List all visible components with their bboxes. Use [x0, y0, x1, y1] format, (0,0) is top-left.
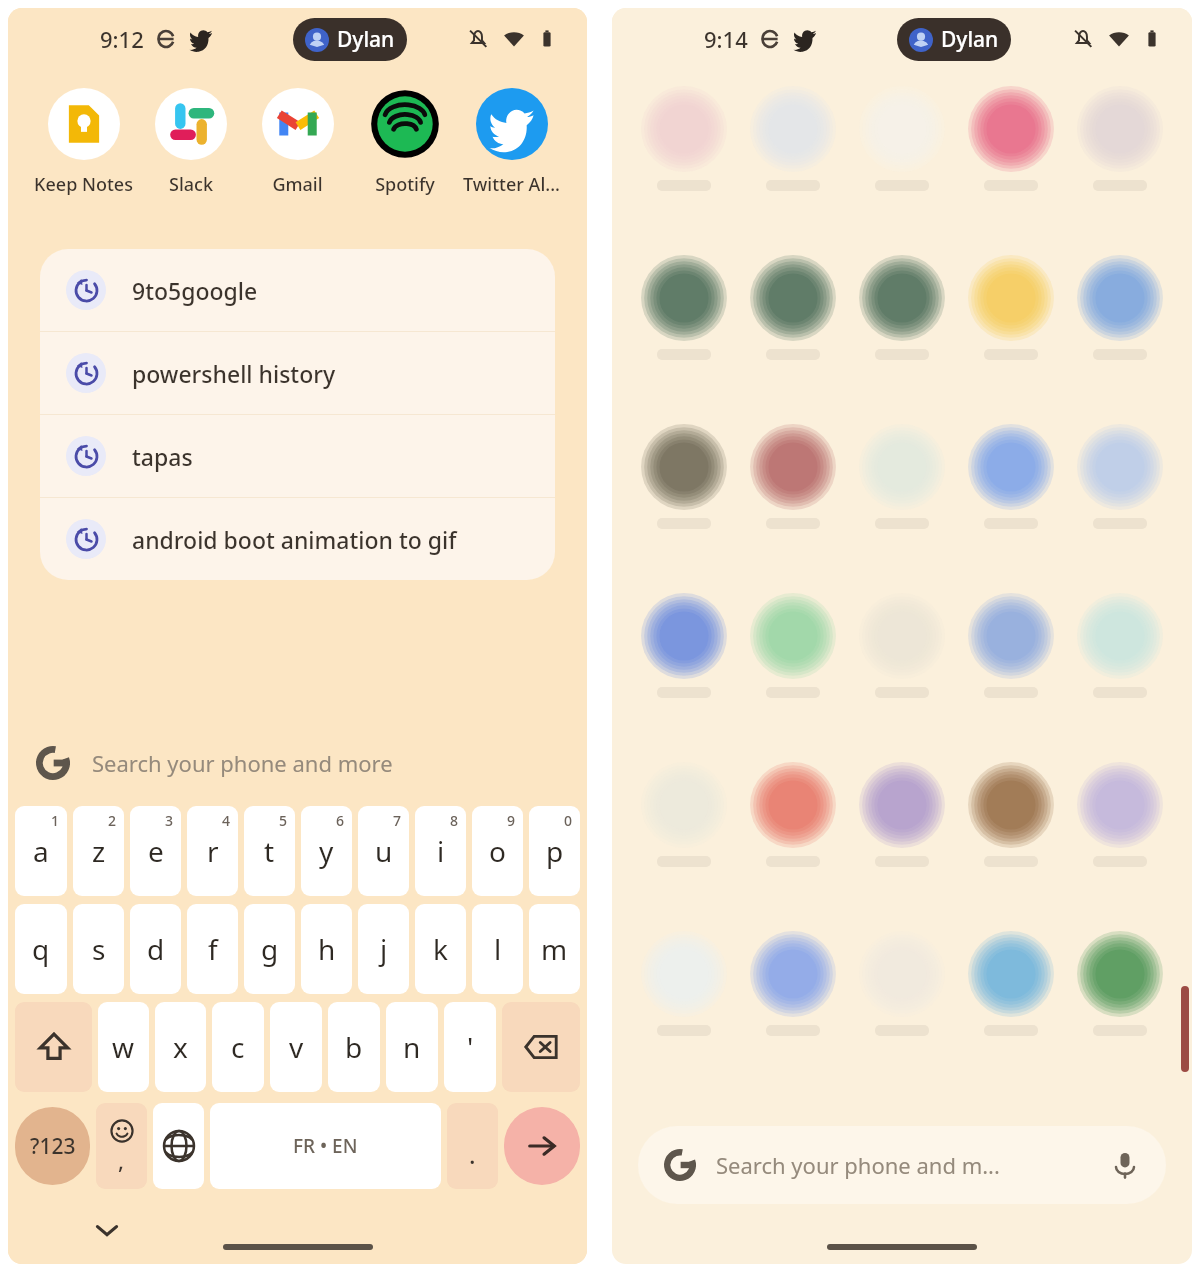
button[interactable] [1065, 259, 1174, 360]
button[interactable] [738, 597, 847, 698]
staticText: z [92, 832, 106, 870]
button[interactable]: f [187, 904, 238, 994]
button[interactable]: Spotify [351, 84, 458, 201]
button[interactable] [847, 766, 956, 867]
button[interactable]: t [244, 806, 295, 896]
button[interactable] [630, 935, 738, 1036]
button[interactable] [956, 766, 1065, 867]
button[interactable]: w [98, 1002, 149, 1092]
button[interactable] [630, 428, 738, 529]
button[interactable] [847, 90, 956, 191]
button[interactable] [956, 428, 1065, 529]
button[interactable]: q [15, 904, 67, 994]
button[interactable] [847, 259, 956, 360]
button[interactable]: j [358, 904, 409, 994]
button[interactable] [738, 766, 847, 867]
staticText: Slack [169, 172, 213, 197]
button[interactable] [738, 935, 847, 1036]
button[interactable]: g [244, 904, 295, 994]
staticText: e [148, 832, 164, 870]
button[interactable]: x [155, 1002, 206, 1092]
staticText: n [403, 1028, 421, 1066]
button[interactable]: c [212, 1002, 264, 1092]
button[interactable] [738, 428, 847, 529]
button[interactable]: Dylan [293, 18, 407, 61]
staticText: 6 [336, 811, 345, 830]
staticText: Keep Notes [34, 172, 133, 197]
staticText: Gmail [272, 172, 323, 197]
button[interactable]: Emoji [96, 1103, 147, 1189]
staticText: . [469, 1138, 476, 1171]
button[interactable]: tapas [40, 415, 555, 497]
button[interactable]: . [447, 1103, 498, 1189]
staticText: 9:12 [100, 24, 144, 54]
button[interactable] [847, 428, 956, 529]
button[interactable] [630, 597, 738, 698]
button[interactable] [1065, 935, 1174, 1036]
button[interactable]: FR • EN [210, 1103, 441, 1189]
button[interactable]: Change language [153, 1103, 204, 1189]
button[interactable] [630, 766, 738, 867]
button[interactable]: o [472, 806, 523, 896]
button[interactable]: Search your phone and m... [638, 1126, 1166, 1204]
button[interactable]: ' [444, 1002, 496, 1092]
button[interactable]: p [529, 806, 580, 896]
staticText: f [208, 930, 218, 968]
button[interactable]: a [15, 806, 67, 896]
button[interactable]: n [386, 1002, 438, 1092]
button[interactable]: Slack [137, 84, 244, 201]
button[interactable]: Gmail [244, 84, 351, 201]
button[interactable]: android boot animation to gif [40, 498, 555, 580]
staticText: 2 [108, 811, 117, 830]
staticText: l [494, 930, 502, 968]
button[interactable] [630, 90, 738, 191]
button[interactable]: r [187, 806, 238, 896]
button[interactable]: v [270, 1002, 322, 1092]
button[interactable]: powershell history [40, 332, 555, 414]
button[interactable]: i [415, 806, 466, 896]
button[interactable] [1065, 428, 1174, 529]
button[interactable]: u [358, 806, 409, 896]
button[interactable] [847, 935, 956, 1036]
button[interactable]: d [130, 904, 181, 994]
button[interactable]: s [73, 904, 124, 994]
button[interactable]: z [73, 806, 124, 896]
button[interactable]: Shift [15, 1002, 92, 1092]
button[interactable]: k [415, 904, 466, 994]
staticText: 9 [507, 811, 516, 830]
button[interactable] [956, 259, 1065, 360]
button[interactable] [1065, 90, 1174, 191]
button[interactable]: Backspace [502, 1002, 580, 1092]
button[interactable]: Dylan [897, 18, 1011, 61]
button[interactable] [847, 597, 956, 698]
button[interactable] [738, 90, 847, 191]
button[interactable]: Keep Notes [30, 84, 137, 201]
button[interactable]: y [301, 806, 352, 896]
button[interactable]: m [529, 904, 580, 994]
button[interactable]: Search your phone and more [8, 725, 587, 801]
staticText: h [318, 930, 336, 968]
button[interactable] [956, 935, 1065, 1036]
button[interactable]: h [301, 904, 352, 994]
staticText: Twitter Al... [463, 172, 560, 197]
button[interactable] [1065, 766, 1174, 867]
button[interactable]: 9to5google [40, 249, 555, 331]
button[interactable]: e [130, 806, 181, 896]
button[interactable] [630, 259, 738, 360]
button[interactable]: b [328, 1002, 380, 1092]
button[interactable] [1065, 597, 1174, 698]
button[interactable]: ?123 [15, 1107, 90, 1185]
staticText: 3 [165, 811, 174, 830]
button[interactable]: Enter [504, 1107, 580, 1185]
button[interactable]: Twitter Al... [458, 84, 565, 201]
staticText: 5 [279, 811, 288, 830]
staticText: FR • EN [293, 1133, 358, 1159]
staticText: v [289, 1028, 304, 1066]
button[interactable] [956, 597, 1065, 698]
staticText: Spotify [375, 172, 435, 197]
staticText: Dylan [337, 25, 395, 54]
button[interactable] [956, 90, 1065, 191]
button[interactable]: l [472, 904, 523, 994]
staticText: q [32, 930, 50, 968]
button[interactable] [738, 259, 847, 360]
